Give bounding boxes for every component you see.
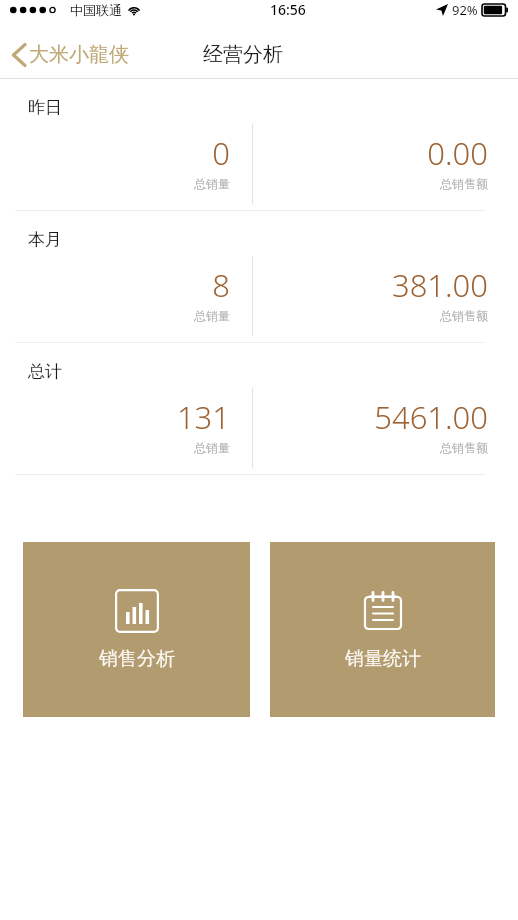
- button[interactable]: 销量统计: [270, 542, 495, 717]
- staticText: 92%: [452, 1, 478, 19]
- staticText: 131: [176, 396, 230, 438]
- staticText: 总销售额: [440, 308, 488, 323]
- staticText: 销售分析: [99, 647, 175, 671]
- staticText: 总销量: [194, 176, 230, 191]
- staticText: 销量统计: [345, 647, 421, 671]
- staticText: 5461.00: [374, 396, 488, 438]
- staticText: 381.00: [391, 264, 488, 306]
- staticText: 8: [212, 264, 230, 306]
- staticText: 经营分析: [203, 42, 283, 67]
- button[interactable]: 销售分析: [23, 542, 250, 717]
- staticText: 大米小龍侠: [29, 42, 129, 67]
- staticText: 中国联通: [70, 2, 122, 18]
- staticText: 16:56: [270, 0, 306, 19]
- staticText: 0.00: [427, 132, 488, 174]
- staticText: 本月: [28, 229, 62, 250]
- button[interactable]: 大米小龍侠: [0, 36, 137, 73]
- staticText: 总销量: [194, 440, 230, 455]
- staticText: 总销量: [194, 308, 230, 323]
- staticText: 总销售额: [440, 440, 488, 455]
- staticText: 总计: [28, 361, 62, 382]
- staticText: 昨日: [28, 97, 62, 118]
- staticText: 0: [212, 132, 230, 174]
- staticText: 总销售额: [440, 176, 488, 191]
